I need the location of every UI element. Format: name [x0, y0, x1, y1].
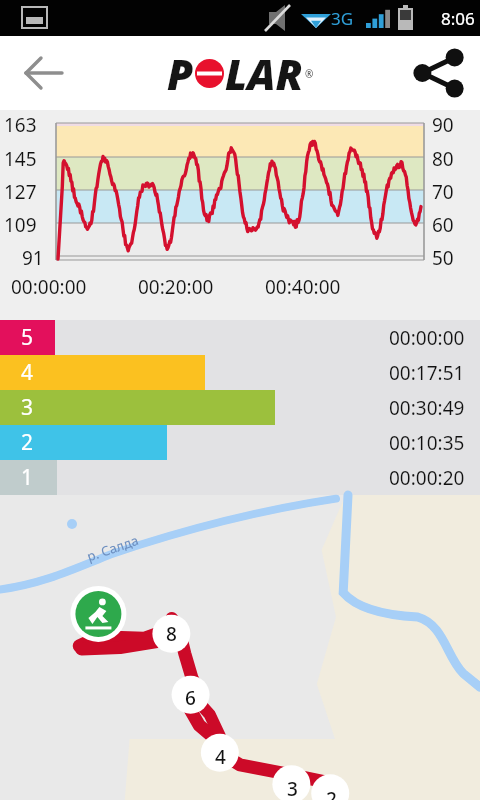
staticText: 70	[432, 179, 454, 205]
staticText: 5	[21, 323, 34, 352]
staticText: 8:06	[441, 7, 475, 30]
staticText: 8	[166, 621, 177, 647]
button[interactable]: 2	[0, 425, 480, 460]
button[interactable]: Share	[412, 47, 464, 99]
staticText: 50	[432, 245, 454, 271]
staticText: 3	[21, 393, 34, 422]
staticText: 1	[21, 463, 34, 492]
button[interactable]: Route map	[0, 495, 480, 800]
staticText: 163	[4, 112, 37, 138]
staticText: 145	[4, 146, 37, 172]
staticText: 127	[4, 179, 37, 205]
staticText: 6	[185, 685, 196, 711]
staticText: 2	[21, 428, 34, 457]
button[interactable]: 4	[0, 355, 480, 390]
button[interactable]: 1	[0, 460, 480, 495]
staticText: 00:30:49	[389, 395, 465, 421]
staticText: 00:00:20	[389, 465, 465, 491]
button[interactable]: Back	[16, 47, 68, 99]
staticText: 3G	[331, 7, 354, 30]
button[interactable]: 5	[0, 320, 480, 355]
staticText: 00:00:00	[11, 274, 87, 300]
staticText: 91	[22, 245, 44, 271]
staticText: LAR	[225, 45, 303, 102]
staticText: 60	[432, 212, 454, 238]
staticText: 4	[215, 744, 226, 770]
staticText: 90	[432, 112, 454, 138]
staticText: 00:20:00	[138, 274, 214, 300]
staticText: P	[167, 45, 194, 102]
staticText: ®	[305, 67, 314, 81]
staticText: р. Салда	[84, 531, 141, 565]
staticText: 3	[287, 776, 298, 800]
staticText: 2	[326, 786, 337, 800]
staticText: 00:00:00	[389, 325, 465, 351]
staticText: 80	[432, 146, 454, 172]
staticText: 00:17:51	[389, 360, 465, 386]
button[interactable]: 3	[0, 390, 480, 425]
staticText: 109	[4, 212, 37, 238]
staticText: 4	[21, 358, 34, 387]
staticText: 00:40:00	[265, 274, 341, 300]
staticText: 00:10:35	[389, 430, 465, 456]
